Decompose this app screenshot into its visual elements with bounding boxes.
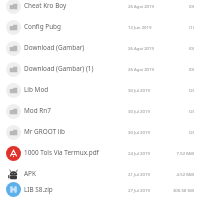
staticText: 1000 Tols Via Termux.pdf (24, 148, 99, 157)
other: Folder (5, 61, 21, 77)
button[interactable]: Folder (0, 79, 200, 100)
staticText: (2) (188, 129, 194, 135)
staticText: 30 Jul 2019 (128, 129, 150, 135)
button[interactable]: Folder (0, 100, 200, 121)
other: Folder (5, 0, 21, 14)
button[interactable]: Folder (0, 121, 200, 142)
staticText: Config Pubg (24, 22, 61, 31)
staticText: Mr GROOT lib (24, 127, 65, 136)
staticText: Cheat Kro Boy (24, 1, 67, 10)
staticText: Mod Rn7 (24, 106, 51, 115)
staticText: 27 Jul 2019 (128, 187, 150, 193)
staticText: (0) (188, 66, 194, 72)
button[interactable]: Folder (0, 16, 200, 37)
button[interactable]: Zip archive (0, 184, 200, 195)
other: Folder (5, 82, 21, 98)
button[interactable]: Android application package (0, 163, 200, 184)
staticText: (0) (188, 3, 194, 9)
staticText: Lib Mod (24, 85, 49, 94)
other: PDF document (5, 145, 21, 161)
staticText: APK Editor_v1.8.20_apkpure.com.apk (24, 169, 126, 178)
staticText: Download (Gambar) (24, 43, 85, 52)
staticText: 26 Agst 2019 (128, 3, 154, 9)
other: Folder (5, 124, 21, 140)
other: Zip archive (5, 184, 21, 195)
button[interactable]: Folder (0, 0, 200, 16)
staticText: 26 Agst 2019 (128, 45, 154, 51)
staticText: LIB S8.zip (24, 185, 53, 194)
staticText: (1) (188, 24, 194, 30)
staticText: Download (Gambar) (1) (24, 64, 94, 73)
button[interactable]: Folder (0, 58, 200, 79)
other: Folder (5, 19, 21, 35)
staticText: 7.52 MiB (176, 150, 194, 156)
staticText: (2) (188, 108, 194, 114)
staticText: 26 Agst 2019 (128, 66, 154, 72)
staticText: 4.52 MiB (176, 171, 194, 177)
staticText: 30 Jul 2019 (128, 87, 150, 93)
button[interactable]: Folder (0, 37, 200, 58)
staticText: (2) (188, 87, 194, 93)
staticText: 300.58 KiB (172, 187, 194, 193)
other: Android application package (5, 166, 21, 182)
staticText: 30 Jul 2019 (128, 108, 150, 114)
staticText: 12 Jun 2019 (128, 24, 152, 30)
staticText: 21 Jul 2019 (128, 171, 150, 177)
staticText: (0) (188, 45, 194, 51)
other: Folder (5, 40, 21, 56)
button[interactable]: PDF document (0, 142, 200, 163)
other: Folder (5, 103, 21, 119)
staticText: 24 Jul 2019 (128, 150, 150, 156)
